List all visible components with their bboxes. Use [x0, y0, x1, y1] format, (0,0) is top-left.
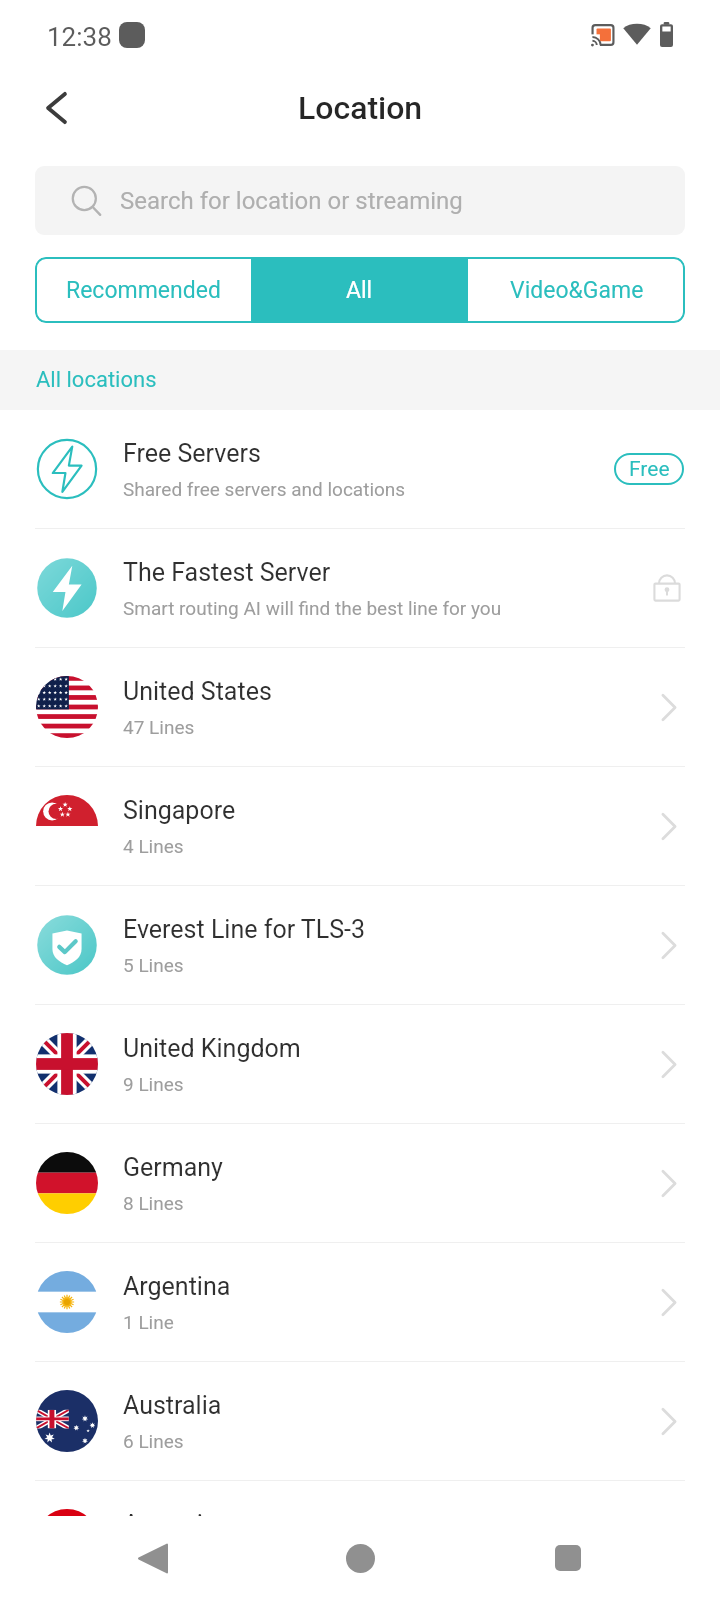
staticText: Free [629, 457, 670, 482]
other: Open [656, 687, 684, 727]
other: Open [656, 1163, 684, 1203]
other: Locked [650, 571, 684, 605]
button[interactable]: Everest Line for TLS-3 [0, 886, 720, 1005]
staticText: The Fastest Server [123, 558, 331, 587]
button[interactable]: The Fastest Server [0, 529, 720, 648]
staticText: Location [298, 89, 423, 127]
button[interactable]: Free [614, 453, 684, 485]
other: Open [656, 1044, 684, 1084]
staticText: 5 Lines [123, 954, 184, 976]
staticText: Search for location or streaming [120, 187, 463, 215]
button[interactable]: All [251, 257, 468, 323]
staticText: 47 Lines [123, 716, 195, 738]
staticText: 6 Lines [123, 1430, 184, 1452]
staticText: Everest Line for TLS-3 [123, 915, 366, 944]
other: Open [656, 925, 684, 965]
staticText: Singapore [123, 796, 236, 825]
other: Open [656, 1401, 684, 1441]
staticText: Australia [123, 1391, 222, 1420]
staticText: 1 Line [123, 1311, 174, 1333]
staticText: Shared free servers and locations [123, 478, 406, 500]
staticText: Recommended [66, 277, 221, 304]
button[interactable]: Germany [0, 1124, 720, 1243]
button[interactable]: Back [49, 1516, 257, 1600]
staticText: United States [123, 677, 272, 706]
staticText: Argentina [123, 1272, 231, 1301]
staticText: 4 Lines [123, 835, 184, 857]
button[interactable]: Home [257, 1516, 464, 1600]
staticText: Armenia [123, 1510, 217, 1539]
staticText: Germany [123, 1153, 223, 1182]
button[interactable]: United States [0, 648, 720, 767]
staticText: All [346, 277, 373, 304]
button[interactable]: United Kingdom [0, 1005, 720, 1124]
staticText: United Kingdom [123, 1034, 301, 1063]
other: Open [656, 806, 684, 846]
staticText: Free Servers [123, 439, 261, 468]
button[interactable]: Singapore [0, 767, 720, 886]
button[interactable]: Video&Game [468, 257, 685, 323]
button[interactable]: Armenia [0, 1481, 720, 1600]
button[interactable]: Recommended [35, 257, 251, 323]
button[interactable]: Argentina [0, 1243, 720, 1362]
staticText: Video&Game [510, 277, 644, 304]
staticText: 12:38 [47, 22, 112, 52]
button[interactable]: Recent apps [464, 1516, 671, 1600]
staticText: All locations [36, 367, 157, 393]
button[interactable]: Free Servers [0, 410, 720, 529]
staticText: 9 Lines [123, 1073, 184, 1095]
staticText: Smart routing AI will find the best line… [123, 597, 502, 619]
staticText: 2 Lines [123, 1549, 184, 1571]
button[interactable]: Back [27, 79, 85, 137]
staticText: 8 Lines [123, 1192, 184, 1214]
other: Open [656, 1282, 684, 1322]
button[interactable]: Search for location or streaming [35, 166, 685, 235]
button[interactable]: Australia [0, 1362, 720, 1481]
